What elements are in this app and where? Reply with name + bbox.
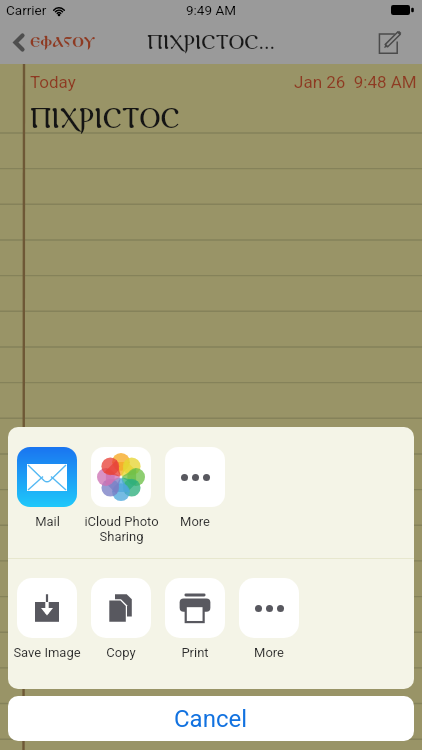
button[interactable]: Mail [10, 447, 84, 557]
staticText: Today [30, 72, 76, 92]
staticText: Jan 26 9:48 AM [294, 72, 417, 92]
button[interactable]: Compose note [368, 20, 412, 64]
staticText: Copy [106, 645, 136, 660]
staticText: iCloud Photo Sharing [84, 514, 159, 544]
button[interactable]: More [158, 447, 232, 557]
staticText: Mail [35, 514, 60, 529]
button[interactable]: Copy [84, 578, 158, 678]
staticText: ⲠⲒⲬⲢⲒⲤⲦⲞⲤ [30, 104, 180, 134]
staticText: ⲠⲒⲬⲢⲒⲤⲦⲞⲤ... [147, 31, 276, 53]
staticText: Carrier [6, 2, 47, 18]
staticText: ⲈⲪⲀⲊⲞⲨ [30, 35, 96, 50]
staticText: Print [181, 645, 209, 660]
staticText: More [254, 645, 284, 660]
button[interactable]: Print [158, 578, 232, 678]
button[interactable]: ⲈⲪⲀⲊⲞⲨ [0, 27, 106, 58]
staticText: 9:49 AM [186, 2, 236, 18]
button[interactable]: Cancel [8, 696, 414, 741]
button[interactable]: iCloud Photo Sharing [84, 447, 158, 557]
staticText: More [180, 514, 210, 529]
staticText: Cancel [174, 705, 248, 733]
button[interactable]: More [232, 578, 306, 678]
staticText: Save Image [13, 645, 81, 660]
button[interactable]: Save Image [10, 578, 84, 678]
